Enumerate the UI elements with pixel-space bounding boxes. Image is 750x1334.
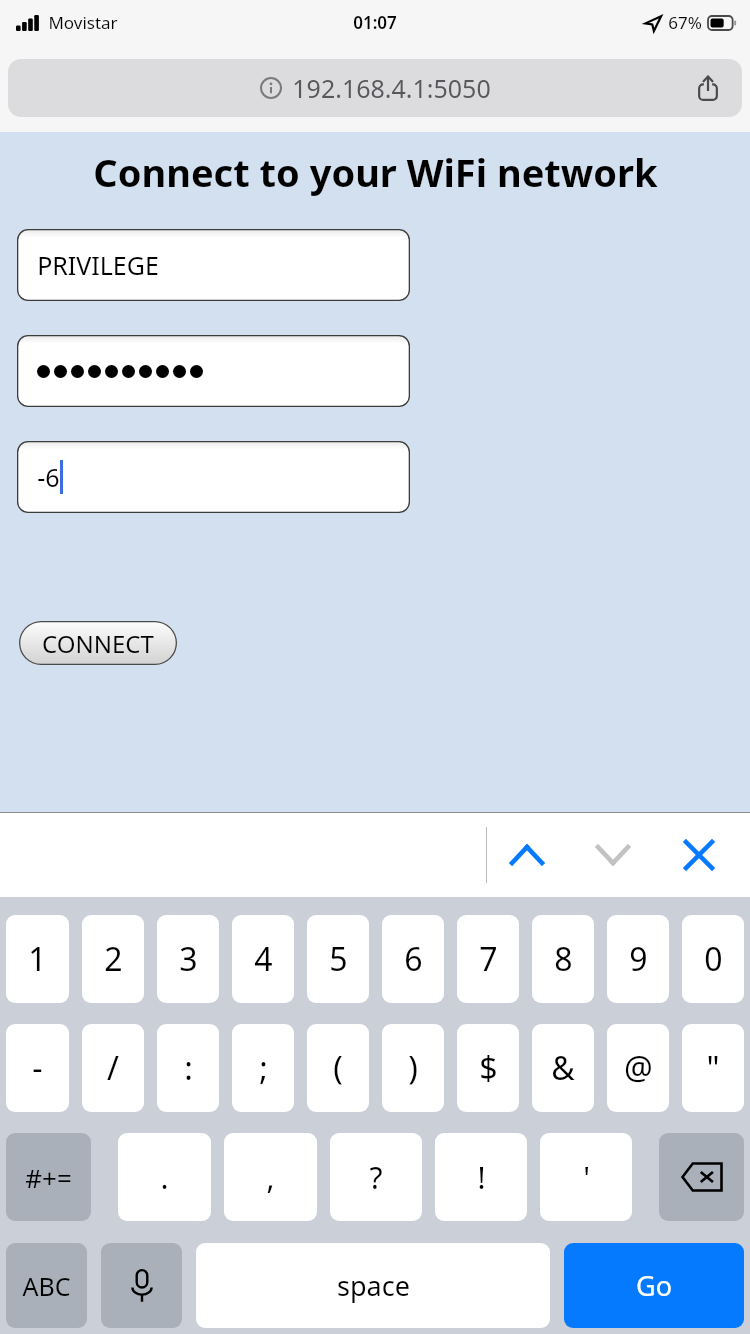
staticText: 5 [329, 937, 348, 981]
staticText: 01:07 [353, 11, 397, 34]
button[interactable]: " [682, 1024, 744, 1112]
staticText: 0 [704, 937, 723, 981]
button[interactable]: , [224, 1133, 317, 1221]
button[interactable]: . [118, 1133, 211, 1221]
staticText: 7 [479, 937, 498, 981]
button[interactable]: 5 [307, 915, 369, 1003]
button[interactable]: Close keyboard [670, 826, 728, 884]
staticText: Go [636, 1267, 672, 1304]
staticText: 6 [404, 937, 423, 981]
staticText: " [706, 1046, 720, 1090]
staticText: , [266, 1157, 275, 1198]
button[interactable]: ' [540, 1133, 632, 1221]
button[interactable]: -6 [17, 441, 410, 513]
button[interactable]: $ [457, 1024, 519, 1112]
button[interactable]: 192.168.4.1:5050 [8, 59, 742, 117]
staticText: @ [624, 1046, 653, 1090]
button[interactable]: 3 [157, 915, 219, 1003]
staticText: $ [479, 1046, 498, 1090]
staticText: -6 [37, 460, 60, 494]
button[interactable]: & [532, 1024, 594, 1112]
button[interactable]: Backspace [659, 1133, 744, 1221]
button[interactable]: 8 [532, 915, 594, 1003]
button[interactable]: : [157, 1024, 219, 1112]
button[interactable]: ) [382, 1024, 444, 1112]
staticText: Connect to your WiFi network [93, 146, 658, 198]
button[interactable]: ? [330, 1133, 422, 1221]
button[interactable]: ! [435, 1133, 527, 1221]
button[interactable]: #+= [6, 1133, 91, 1221]
staticText: / [107, 1046, 119, 1090]
button[interactable] [17, 335, 410, 407]
button[interactable]: Go [564, 1243, 744, 1328]
staticText: Movistar [48, 11, 118, 34]
button[interactable]: space [196, 1243, 550, 1328]
staticText: ABC [22, 1269, 71, 1303]
staticText: ) [408, 1046, 418, 1090]
button[interactable]: 4 [232, 915, 294, 1003]
staticText: 1 [28, 937, 47, 981]
staticText: ( [333, 1046, 343, 1090]
staticText: 2 [104, 937, 123, 981]
button[interactable]: 6 [382, 915, 444, 1003]
button[interactable]: PRIVILEGE [17, 229, 410, 301]
staticText: ? [369, 1157, 383, 1198]
button[interactable]: Previous field [498, 826, 556, 884]
button[interactable]: Share [688, 68, 728, 108]
staticText: ! [477, 1157, 486, 1198]
staticText: CONNECT [42, 627, 154, 660]
staticText: 3 [179, 937, 198, 981]
staticText: 4 [254, 937, 273, 981]
staticText: 8 [554, 937, 573, 981]
staticText: 67% [668, 11, 702, 34]
button[interactable]: CONNECT [19, 621, 177, 665]
staticText: - [32, 1046, 43, 1090]
staticText: #+= [25, 1160, 72, 1195]
staticText: ; [259, 1046, 268, 1090]
button[interactable]: ABC [6, 1243, 87, 1328]
button[interactable]: Dictate [101, 1243, 182, 1328]
button[interactable]: - [6, 1024, 69, 1112]
staticText: : [184, 1046, 193, 1090]
staticText: 9 [629, 937, 648, 981]
button[interactable]: 1 [6, 915, 69, 1003]
button[interactable]: ; [232, 1024, 294, 1112]
staticText: & [551, 1046, 575, 1090]
button[interactable]: 2 [82, 915, 144, 1003]
button[interactable]: @ [607, 1024, 669, 1112]
button[interactable]: / [82, 1024, 144, 1112]
staticText: ' [583, 1157, 590, 1198]
staticText: . [160, 1157, 169, 1198]
staticText: 192.168.4.1:5050 [292, 71, 491, 105]
button[interactable]: 9 [607, 915, 669, 1003]
button[interactable]: ( [307, 1024, 369, 1112]
button[interactable]: 0 [682, 915, 744, 1003]
button[interactable]: Next field [584, 826, 642, 884]
button[interactable]: 7 [457, 915, 519, 1003]
staticText: space [337, 1267, 410, 1304]
staticText: PRIVILEGE [37, 248, 159, 282]
